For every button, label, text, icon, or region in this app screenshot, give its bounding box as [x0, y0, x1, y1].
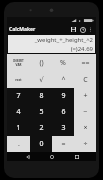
staticText: 6	[61, 107, 66, 117]
staticText: −	[83, 107, 88, 117]
staticText: +	[83, 91, 88, 101]
button[interactable]: +	[74, 88, 96, 104]
button[interactable]: C	[74, 71, 96, 88]
staticText: 7	[16, 91, 21, 101]
staticText: ÷	[83, 139, 88, 149]
button[interactable]: ()	[30, 54, 52, 71]
staticText: 9	[61, 91, 66, 101]
button[interactable]: 6	[52, 104, 74, 120]
staticText: %	[60, 58, 66, 68]
staticText: ()	[39, 58, 44, 68]
button[interactable]: ^	[52, 71, 74, 88]
staticText: ==	[81, 58, 90, 68]
button[interactable]: −	[74, 104, 96, 120]
staticText: .	[18, 139, 20, 149]
button[interactable]: More options	[87, 26, 94, 33]
staticText: 0	[39, 139, 44, 149]
button[interactable]: Recent apps	[72, 152, 81, 161]
button[interactable]: ÷	[74, 136, 96, 152]
staticText: INSERT VAR	[13, 59, 24, 67]
button[interactable]: 2	[30, 120, 52, 136]
staticText: root	[15, 78, 22, 82]
button[interactable]: ==	[74, 54, 96, 71]
button[interactable]: History	[78, 25, 87, 34]
button[interactable]: √	[30, 71, 52, 88]
staticText: 2	[39, 123, 44, 133]
button[interactable]: 1	[7, 120, 30, 136]
button[interactable]: =	[52, 136, 74, 152]
button[interactable]: 5	[30, 104, 52, 120]
button[interactable]: Home	[47, 152, 56, 161]
button[interactable]: Back	[23, 152, 32, 161]
staticText: 3	[61, 123, 66, 133]
button[interactable]: 7	[7, 88, 30, 104]
staticText: C	[83, 75, 88, 85]
button[interactable]: ×	[74, 120, 96, 136]
staticText: =	[61, 139, 66, 149]
staticText: ^	[61, 75, 66, 85]
staticText: 5	[39, 107, 44, 117]
button[interactable]: root	[7, 71, 30, 88]
button[interactable]: Save	[69, 25, 78, 34]
button[interactable]: 8	[30, 88, 52, 104]
staticText: ×	[83, 123, 88, 133]
button[interactable]: 4	[7, 104, 30, 120]
staticText: CalcMaker	[9, 26, 36, 33]
button[interactable]: 9	[52, 88, 74, 104]
staticText: (=)24.69	[70, 45, 93, 52]
staticText: 1	[16, 123, 21, 133]
button[interactable]: .	[7, 136, 30, 152]
button[interactable]: %	[52, 54, 74, 71]
staticText: _weight_+_height_^2	[34, 36, 93, 44]
staticText: 8	[39, 91, 44, 101]
staticText: 4	[16, 107, 21, 117]
button[interactable]: 3	[52, 120, 74, 136]
button[interactable]: INSERT VAR	[7, 54, 30, 71]
staticText: √	[39, 76, 44, 84]
button[interactable]: 0	[30, 136, 52, 152]
